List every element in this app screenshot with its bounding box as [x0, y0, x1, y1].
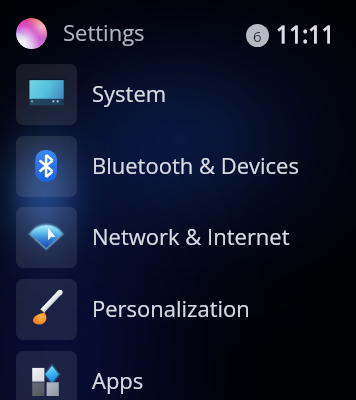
staticText: Bluetooth & Devices: [92, 150, 299, 180]
button[interactable]: Apps: [0, 351, 356, 400]
staticText: 11:11: [276, 18, 335, 49]
staticText: Personalization: [92, 293, 250, 323]
staticText: 6: [253, 26, 262, 46]
button[interactable]: Network & Internet: [0, 207, 356, 268]
button[interactable]: Settings: [63, 17, 145, 47]
staticText: Settings: [63, 17, 145, 47]
button[interactable]: System: [0, 64, 356, 125]
button[interactable]: Personalization: [0, 279, 356, 340]
button[interactable]: Notifications: [246, 24, 269, 47]
staticText: Network & Internet: [92, 221, 290, 251]
button[interactable]: Bluetooth & Devices: [0, 136, 356, 197]
staticText: Apps: [92, 365, 144, 395]
button[interactable]: Account: [16, 18, 47, 49]
staticText: System: [92, 78, 167, 108]
